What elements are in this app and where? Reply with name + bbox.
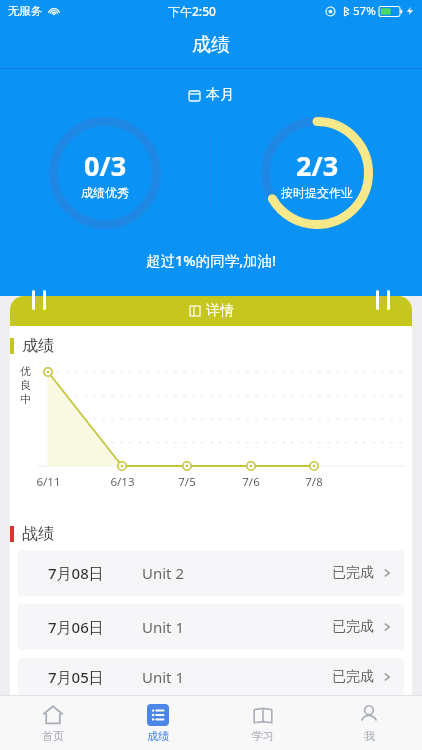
staticText: Unit 1 <box>142 667 185 687</box>
staticText: 已完成 <box>332 564 374 582</box>
staticText: 7/8 <box>305 474 323 490</box>
staticText: 成绩 <box>147 729 169 743</box>
staticText: Unit 2 <box>142 563 185 583</box>
staticText: 7月08日 <box>48 563 104 583</box>
button[interactable]: 7月08日 <box>18 550 404 596</box>
staticText: 详情 <box>206 302 234 320</box>
staticText: 0/3 <box>84 147 127 184</box>
button[interactable]: 学习 <box>210 696 316 750</box>
staticText: 已完成 <box>332 618 374 636</box>
staticText: 战绩 <box>22 524 54 544</box>
staticText: 本月 <box>206 86 234 104</box>
staticText: 学习 <box>252 729 274 743</box>
staticText: 优 <box>20 364 31 378</box>
staticText: 下午2:50 <box>168 3 216 19</box>
button[interactable]: 7月05日 <box>18 658 404 695</box>
staticText: 2/3 <box>296 147 339 184</box>
staticText: 中 <box>20 392 31 406</box>
staticText: 无服务 <box>8 4 43 18</box>
staticText: 按时提交作业 <box>281 185 353 200</box>
button[interactable]: 7月06日 <box>18 604 404 650</box>
staticText: 良 <box>20 378 31 392</box>
button[interactable]: 我 <box>316 696 422 750</box>
staticText: 首页 <box>42 729 64 743</box>
staticText: 成绩 <box>22 336 54 356</box>
staticText: 成绩优秀 <box>81 185 129 200</box>
staticText: 7月06日 <box>48 617 104 637</box>
staticText: 7月05日 <box>48 667 104 687</box>
button[interactable]: 成绩 <box>105 696 210 750</box>
staticText: 7/5 <box>178 474 196 490</box>
button[interactable]: 首页 <box>0 696 105 750</box>
staticText: 已完成 <box>332 668 374 686</box>
staticText: 成绩 <box>192 33 230 57</box>
staticText: 超过1%的同学,加油! <box>146 250 277 270</box>
staticText: 6/13 <box>110 474 135 490</box>
staticText: 57% <box>353 3 376 19</box>
staticText: 7/6 <box>242 474 260 490</box>
staticText: 我 <box>364 729 375 743</box>
staticText: 6/11 <box>36 474 61 490</box>
staticText: Unit 1 <box>142 617 185 637</box>
